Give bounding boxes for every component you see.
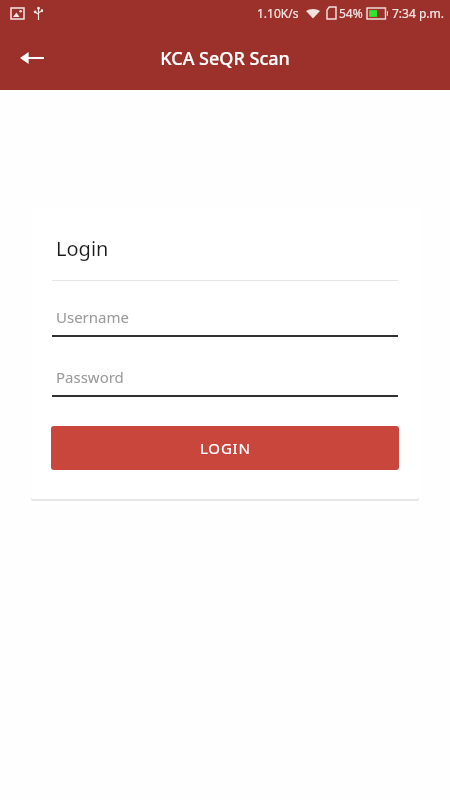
button[interactable]: LOGIN xyxy=(51,426,399,470)
button[interactable]: Password xyxy=(52,367,398,397)
staticText: Username xyxy=(56,307,129,327)
staticText: 7:34 p.m. xyxy=(392,5,444,21)
button[interactable]: Username xyxy=(52,307,398,337)
staticText: LOGIN xyxy=(200,438,251,458)
staticText: KCA SeQR Scan xyxy=(160,46,290,71)
staticText: 1.10K/s xyxy=(257,5,299,21)
button[interactable]: Back xyxy=(8,34,56,82)
staticText: Login xyxy=(56,235,109,262)
staticText: 54% xyxy=(339,5,363,21)
staticText: Password xyxy=(56,367,124,387)
